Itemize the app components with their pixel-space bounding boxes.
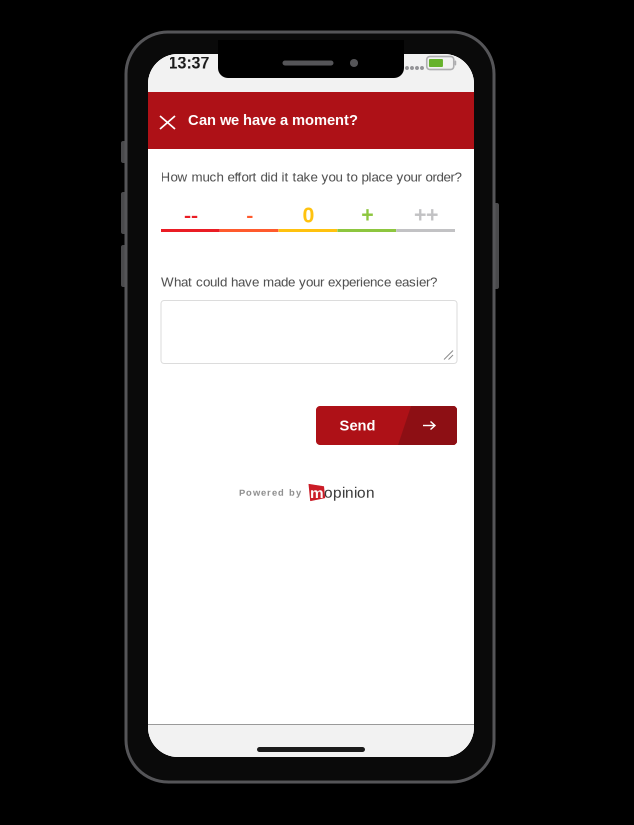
staticText: 0 [302, 203, 314, 227]
staticText: Send [339, 417, 375, 434]
button[interactable]: ++ [397, 202, 455, 228]
staticText: 13:37 [168, 54, 209, 72]
staticText: opinion [324, 484, 375, 501]
button[interactable]: 0 [279, 202, 338, 228]
button[interactable]: Send [316, 406, 457, 445]
button[interactable]: Close [150, 105, 184, 139]
button[interactable]: -- [161, 202, 220, 228]
staticText: Can we have a moment? [188, 112, 358, 128]
staticText: What could have made your experience eas… [161, 275, 437, 289]
staticText: P o w e r e d b y [239, 487, 301, 498]
staticText: m [310, 484, 324, 501]
button[interactable]: - [220, 202, 279, 228]
button[interactable]: + [338, 202, 397, 228]
staticText: -- [184, 203, 198, 227]
staticText: ++ [414, 203, 438, 227]
staticText: + [361, 203, 373, 227]
staticText: How much effort did it take you to place… [160, 170, 461, 184]
staticText: - [246, 203, 253, 227]
